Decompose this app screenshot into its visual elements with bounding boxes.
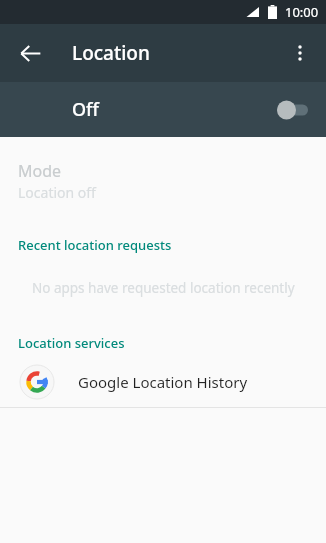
button[interactable]: Google Location History [0,360,326,404]
staticText: Recent location requests [18,236,172,254]
staticText: Google Location History [78,372,248,392]
staticText: Location services [18,334,125,352]
button[interactable]: More options [280,33,320,73]
staticText: Mode [18,160,62,182]
staticText: Location off [18,183,96,202]
button[interactable]: Mode [0,159,326,206]
staticText: Location [72,40,150,66]
staticText: 10:00 [285,3,319,21]
button[interactable]: Off [0,82,326,137]
staticText: Off [72,97,99,122]
staticText: No apps have requested location recently [32,279,295,297]
button[interactable]: Back [10,33,50,73]
